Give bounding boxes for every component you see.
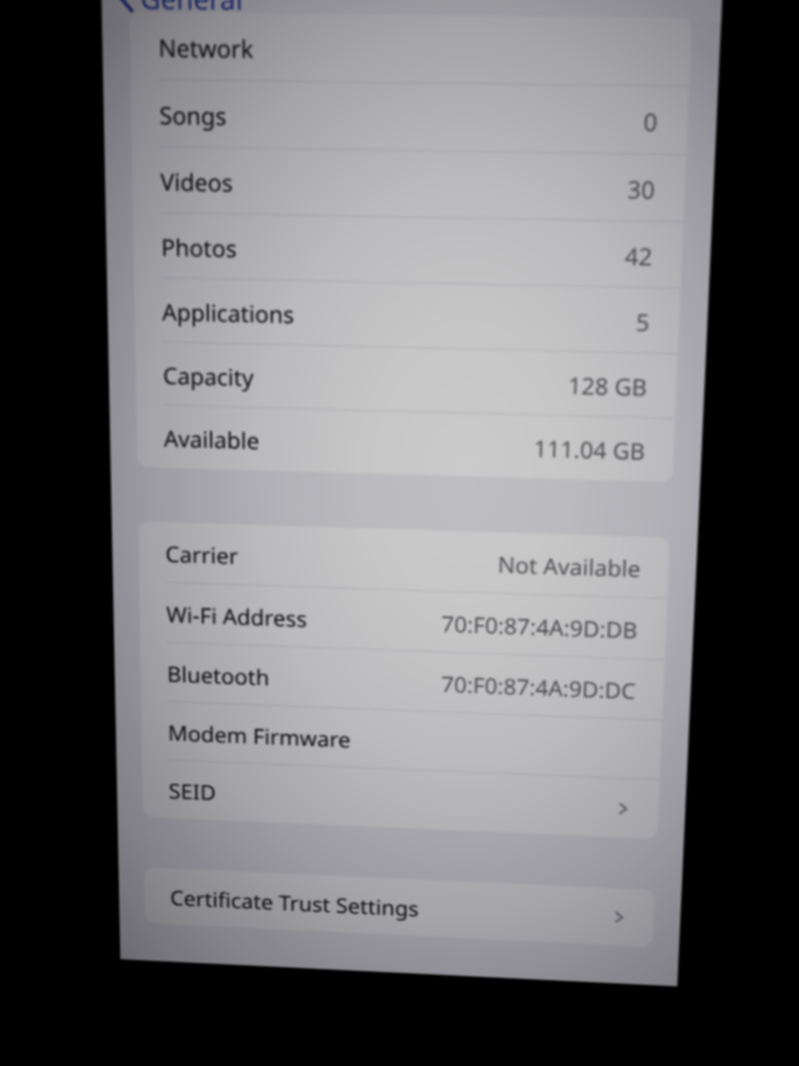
staticText: Songs <box>159 98 227 131</box>
staticText: Videos <box>160 165 233 198</box>
button[interactable]: Wi-Fi Address <box>139 582 668 661</box>
staticText: SEID <box>168 776 217 806</box>
staticText: Capacity <box>163 359 254 392</box>
staticText: Available <box>164 422 260 455</box>
staticText: 70:F0:87:4A:9D:DC <box>441 669 636 705</box>
staticText: 30 <box>627 172 656 205</box>
button[interactable]: Modem Firmware <box>141 701 663 780</box>
staticText: 42 <box>624 239 654 272</box>
staticText: 70:F0:87:4A:9D:DB <box>441 608 639 644</box>
staticText: 0 <box>643 104 659 138</box>
button[interactable]: Applications <box>134 278 681 354</box>
staticText: Certificate Trust Settings <box>170 883 419 922</box>
staticText: Photos <box>161 230 238 263</box>
staticText: Carrier <box>165 538 238 570</box>
button[interactable]: Songs <box>130 80 689 155</box>
button[interactable]: Available <box>136 405 675 482</box>
button[interactable]: Certificate Trust Settings <box>144 867 655 947</box>
staticText: General <box>140 0 243 18</box>
staticText: Modem Firmware <box>168 718 351 753</box>
staticText: 111.04 GB <box>533 432 646 466</box>
staticText: Not Available <box>497 549 641 583</box>
staticText: 128 GB <box>568 369 649 402</box>
staticText: 5 <box>635 305 651 337</box>
button[interactable]: Carrier <box>138 521 670 599</box>
button[interactable]: SEID <box>142 759 660 839</box>
button[interactable]: Photos <box>133 213 684 289</box>
staticText: Network <box>158 30 254 64</box>
button[interactable]: Bluetooth <box>140 642 665 721</box>
staticText: Bluetooth <box>167 659 270 691</box>
button[interactable]: Network <box>129 12 692 87</box>
staticText: Applications <box>162 295 295 329</box>
button[interactable]: Back to General <box>117 0 243 18</box>
button[interactable]: Videos <box>132 147 686 222</box>
staticText: Wi-Fi Address <box>166 599 307 633</box>
button[interactable]: Capacity <box>135 342 678 419</box>
